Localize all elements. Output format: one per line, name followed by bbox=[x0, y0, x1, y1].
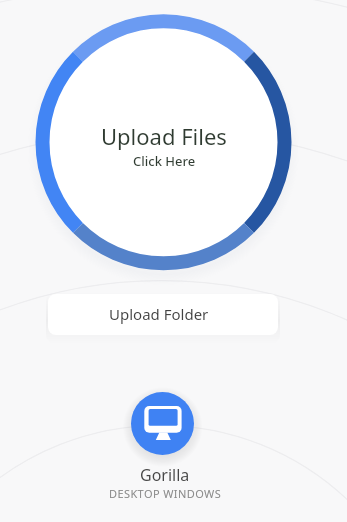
staticText: Click Here bbox=[133, 152, 196, 170]
staticText: DESKTOP WINDOWS bbox=[109, 486, 222, 501]
staticText: Gorilla bbox=[140, 464, 190, 486]
button[interactable]: Gorilla desktop device bbox=[131, 392, 194, 455]
button[interactable]: Upload Files bbox=[36, 14, 292, 270]
button[interactable]: Upload Folder bbox=[48, 294, 278, 335]
staticText: Upload Folder bbox=[109, 304, 209, 324]
staticText: Upload Files bbox=[101, 121, 227, 151]
